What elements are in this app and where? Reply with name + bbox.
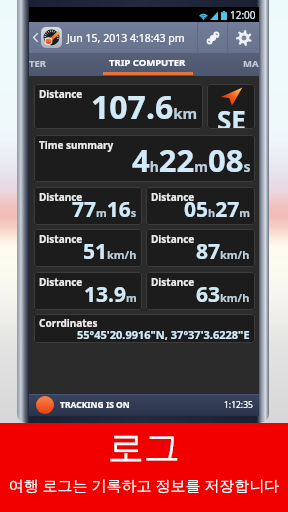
staticText: 77m16s (72, 195, 137, 224)
other: Back (32, 32, 39, 43)
staticText: Jun 15, 2013 4:18:43 pm (67, 31, 185, 45)
staticText: 87km/h (196, 237, 250, 266)
staticText: 05h27m (184, 195, 250, 224)
staticText: 55°45'20.9916"N, 37°37'3.6228"E (77, 327, 250, 342)
button[interactable]: 로그 (0, 423, 288, 512)
button[interactable]: Share link (198, 22, 227, 53)
staticText: Distance (39, 190, 83, 204)
button[interactable]: Corrdinates (34, 314, 255, 343)
staticText: 로그 (0, 425, 288, 470)
staticText: 63km/h (196, 280, 250, 309)
staticText: 13.9m (84, 280, 137, 309)
staticText: TRIP COMPUTER (109, 56, 186, 69)
staticText: MA (243, 57, 259, 70)
staticText: 107.6km (91, 85, 198, 129)
staticText: SE (217, 102, 246, 129)
button[interactable]: SE (207, 84, 255, 129)
button[interactable]: Settings (228, 22, 259, 53)
staticText: Corrdinates (39, 316, 98, 330)
button[interactable]: Distance (146, 229, 255, 267)
button[interactable]: Back (29, 22, 205, 53)
button[interactable]: Distance (34, 84, 203, 129)
staticText: TRACKING IS ON (60, 399, 130, 411)
staticText: 12:00 (230, 8, 256, 22)
staticText: TER (29, 57, 47, 70)
button[interactable]: TRIP COMPUTER (100, 53, 195, 76)
staticText: 1:12:35 (224, 399, 253, 411)
button[interactable]: Distance (146, 187, 255, 225)
staticText: Time summary (39, 138, 114, 152)
staticText: Distance (151, 232, 195, 246)
staticText: 여행 로그는 기록하고 정보를 저장합니다 (0, 475, 288, 495)
staticText: Distance (39, 275, 83, 289)
button[interactable]: Distance (34, 272, 142, 310)
staticText: 51km/h (83, 237, 137, 266)
button[interactable]: Distance (146, 272, 255, 310)
staticText: Distance (151, 190, 195, 204)
staticText: Distance (39, 87, 83, 101)
button[interactable]: Time summary (34, 135, 255, 182)
button[interactable]: Distance (34, 187, 142, 225)
staticText: Distance (39, 232, 83, 246)
staticText: 4h22m08s (132, 139, 251, 181)
staticText: Distance (151, 275, 195, 289)
button[interactable]: Distance (34, 229, 142, 267)
